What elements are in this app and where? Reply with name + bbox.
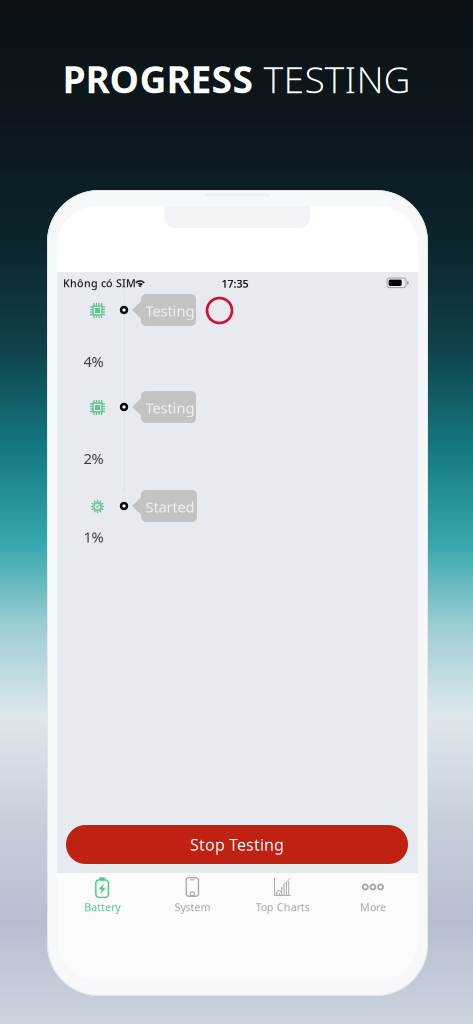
staticText: Battery — [84, 900, 120, 914]
staticText: 4% — [83, 351, 103, 371]
staticText: System — [174, 900, 210, 914]
staticText: PROGRESS — [62, 54, 263, 104]
staticText: Testing — [145, 398, 194, 417]
staticText: TESTING — [263, 54, 410, 104]
staticText: 2% — [83, 448, 103, 468]
staticText: 1% — [83, 527, 103, 546]
button[interactable]: Top Charts — [237, 872, 328, 921]
button[interactable]: Battery — [57, 872, 147, 921]
button[interactable]: More — [328, 872, 418, 921]
button[interactable]: System — [147, 872, 237, 921]
staticText: Stop Testing — [190, 834, 284, 855]
staticText: More — [360, 900, 386, 914]
button[interactable]: Stop Testing — [66, 825, 408, 864]
staticText: Testing — [145, 301, 194, 320]
staticText: Không có SIM — [63, 276, 136, 290]
staticText: 17:35 — [221, 276, 248, 291]
staticText: Started — [145, 497, 194, 516]
staticText: Top Charts — [256, 900, 310, 914]
